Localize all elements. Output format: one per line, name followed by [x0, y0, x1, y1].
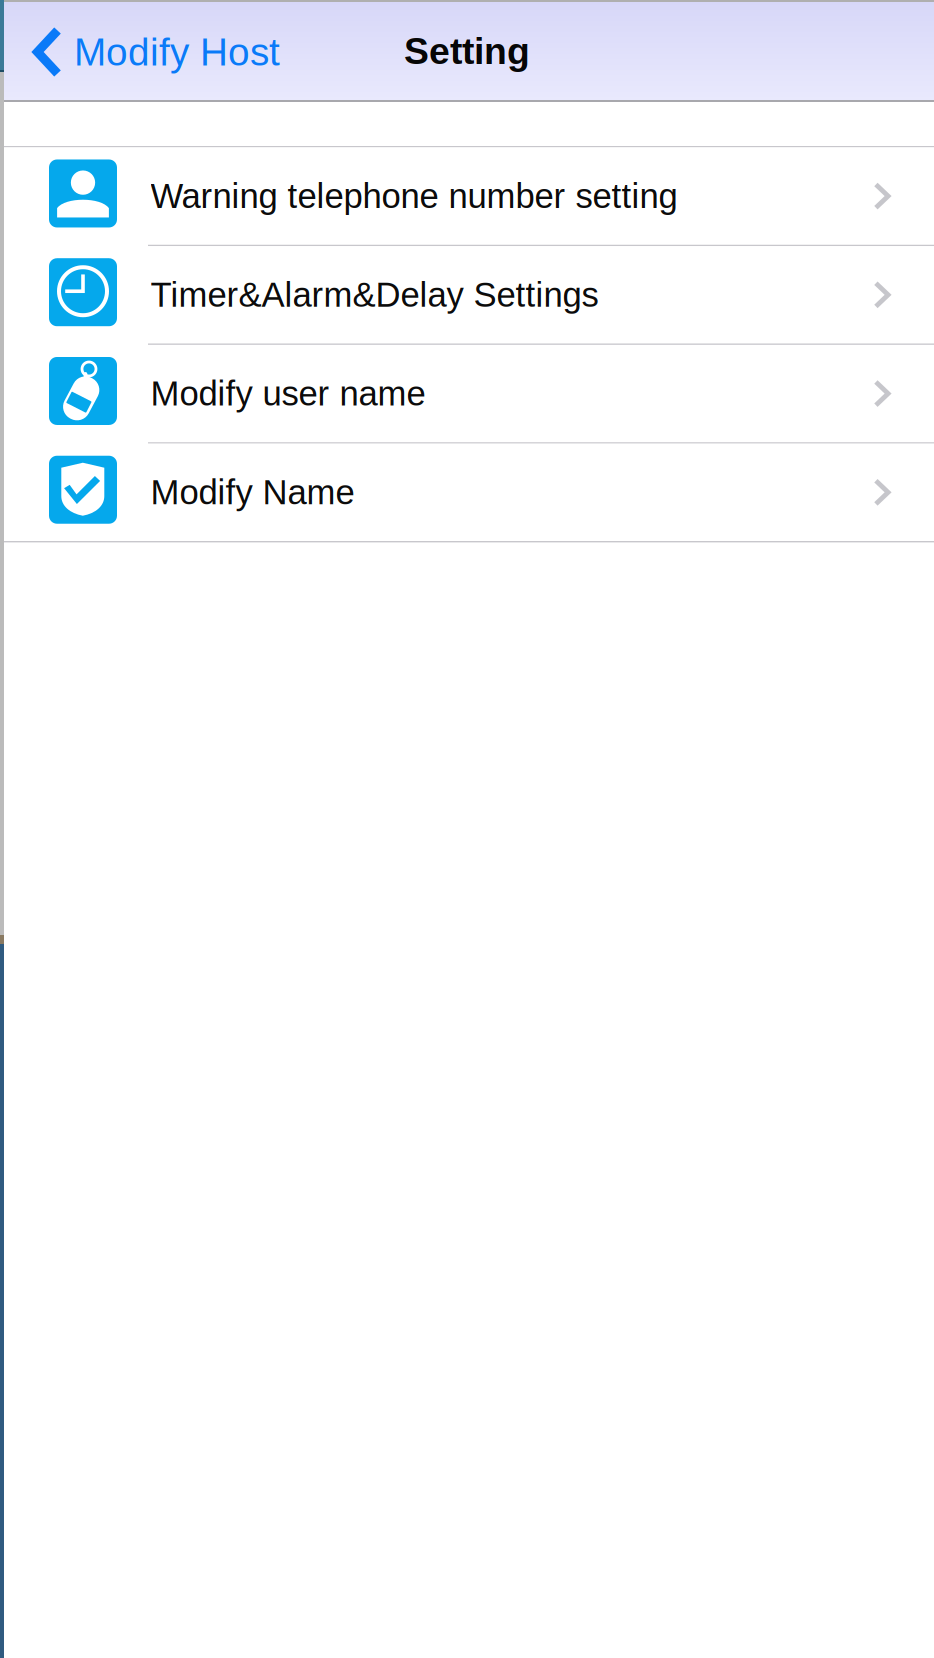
button[interactable]: Modify user name — [0, 345, 934, 442]
button[interactable]: Warning telephone number setting — [0, 147, 934, 245]
button[interactable]: Modify Host — [0, 2, 294, 100]
button[interactable]: Timer&Alarm&Delay Settings — [0, 246, 934, 343]
staticText: Modify user name — [150, 374, 425, 413]
staticText: Timer&Alarm&Delay Settings — [150, 275, 598, 314]
staticText: Modify Name — [150, 473, 354, 512]
staticText: Setting — [404, 30, 530, 72]
button[interactable]: Modify Name — [0, 444, 934, 541]
staticText: Modify Host — [74, 30, 280, 74]
staticText: Warning telephone number setting — [150, 177, 677, 215]
